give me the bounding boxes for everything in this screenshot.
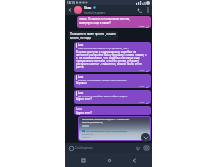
staticText: леске. Оставить в нескольких местах, xyxy=(79,17,130,21)
staticText: Положите в пакет просто , начать xyxy=(70,32,116,36)
staticText: 17:41 xyxy=(139,101,145,104)
button[interactable]: Call xyxy=(134,5,144,15)
staticText: Stas xyxy=(84,5,92,10)
button[interactable]: Back xyxy=(127,153,141,167)
staticText: Семью то возврату потому вам ветрено. xyxy=(78,78,127,81)
staticText: В целях доступа к содержимому коробки на… xyxy=(76,50,149,69)
staticText: Lara xyxy=(78,91,84,94)
button[interactable]: Back xyxy=(65,5,74,15)
staticText: Lara xyxy=(76,107,82,111)
staticText: Lara xyxy=(78,75,84,78)
staticText: завернуть еще в пакет? xyxy=(79,21,111,25)
button[interactable]: Recents xyxy=(76,153,90,167)
staticText: ОП Праблемие Бантер (Германия) xyxy=(86,129,128,132)
button[interactable]: Home xyxy=(102,153,116,167)
staticText: При получении заказа в ЦР делаете, что..… xyxy=(78,46,130,49)
button[interactable]: Attach xyxy=(134,144,142,152)
staticText: Lara xyxy=(78,43,84,46)
staticText: Сообщение xyxy=(75,146,134,150)
staticText: 17:41 xyxy=(139,85,145,88)
staticText: Адрес этот? xyxy=(76,97,92,101)
staticText: До 16.08.21 октября: несло обувь надо в. xyxy=(78,94,128,97)
button[interactable]: Emoji xyxy=(67,144,75,152)
staticText: 17:41 xyxy=(139,69,145,72)
staticText: класть, не надо xyxy=(70,36,91,40)
staticText: Заполнить принятия Видеть с - Реквизиты xyxy=(82,118,130,121)
staticText: был(а) недавно xyxy=(84,11,105,15)
staticText: 17:41 xyxy=(139,25,145,28)
button[interactable]: Camera xyxy=(142,144,150,152)
button[interactable]: Photo xyxy=(79,117,150,140)
staticText: Адрес этот? xyxy=(76,111,92,115)
staticText: Хорошо xyxy=(76,81,87,85)
staticText: Бантер (Германия) xyxy=(82,121,103,124)
staticText: 18:13 xyxy=(67,1,75,5)
staticText: Выписка из реестра документа xyxy=(82,133,94,139)
button[interactable]: More options xyxy=(144,5,152,15)
button[interactable]: Scroll to bottom xyxy=(141,133,150,142)
